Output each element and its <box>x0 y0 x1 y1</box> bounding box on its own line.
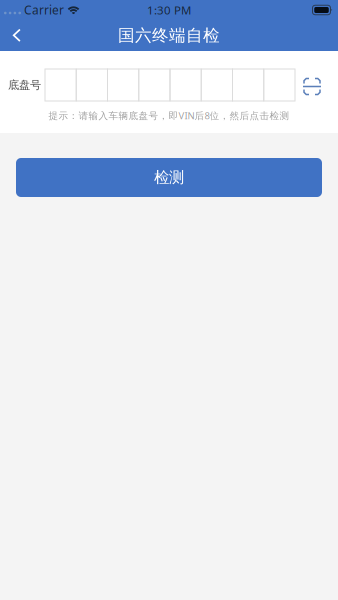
staticText: 底盘号 <box>8 78 41 92</box>
button[interactable]: 检测 <box>16 158 322 197</box>
button[interactable]: Chassis number <box>45 69 295 101</box>
staticText: 提示：请输入车辆底盘号，即VIN后8位，然后点击检测 <box>48 109 289 122</box>
staticText: 国六终端自检 <box>118 25 220 46</box>
staticText: 1:30 PM <box>147 2 191 18</box>
staticText: 检测 <box>154 168 184 187</box>
button[interactable]: Back <box>0 20 34 51</box>
button[interactable]: Scan <box>298 69 326 101</box>
staticText: Carrier <box>21 2 67 18</box>
